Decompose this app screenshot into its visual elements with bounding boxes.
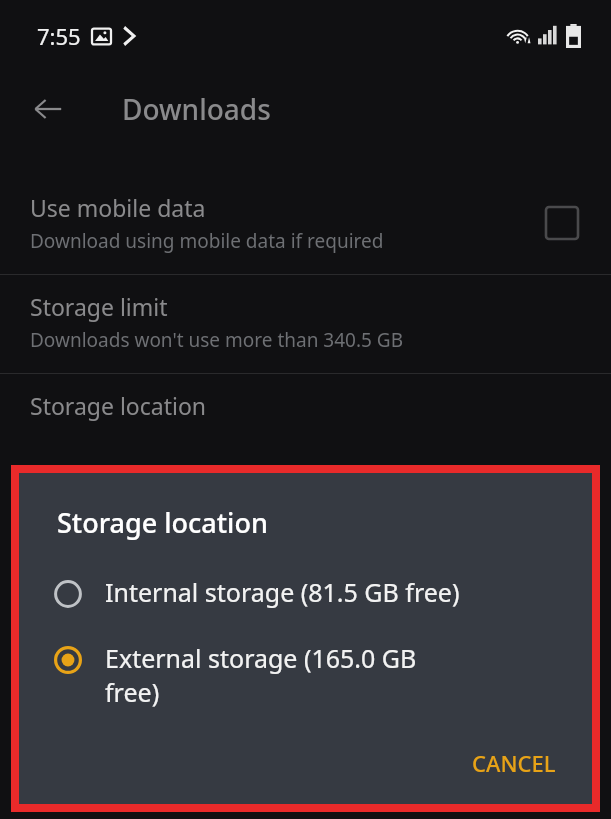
button[interactable]: Use mobile data checkbox	[539, 200, 585, 246]
staticText: Internal storage (81.5 GB free)	[105, 575, 460, 609]
staticText: 7:55	[37, 21, 81, 51]
staticText: External storage (165.0 GB free)	[105, 641, 417, 709]
button[interactable]: Storage limit	[0, 275, 611, 373]
button[interactable]: Storage location	[0, 374, 611, 441]
staticText: Storage location	[30, 390, 207, 421]
staticText: Use mobile data	[30, 192, 206, 223]
button[interactable]: CANCEL	[458, 740, 570, 786]
staticText: Download using mobile data if required	[30, 228, 384, 254]
button[interactable]: External storage (165.0 GB free)	[19, 633, 592, 713]
staticText: Storage location	[57, 504, 268, 541]
staticText: Downloads won't use more than 340.5 GB	[30, 327, 404, 353]
button[interactable]: Use mobile data	[0, 176, 611, 274]
staticText: CANCEL	[472, 748, 556, 778]
button[interactable]: Internal storage (81.5 GB free)	[19, 567, 592, 621]
button[interactable]: Back	[22, 83, 74, 135]
staticText: Storage limit	[30, 291, 168, 322]
staticText: Downloads	[122, 90, 271, 128]
